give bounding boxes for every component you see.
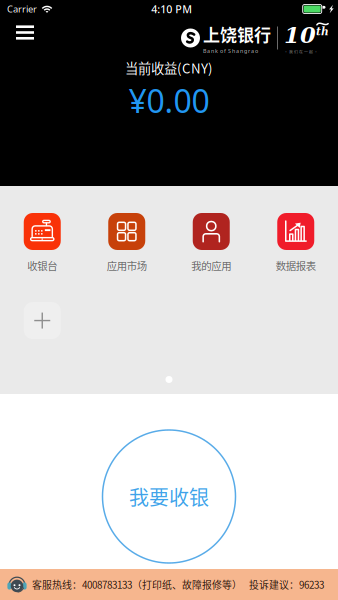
staticText: 投诉建议：96233 [249, 577, 324, 592]
staticText: ¥0.00 [128, 79, 209, 122]
button[interactable]: 我的应用 [169, 213, 253, 273]
staticText: 收银台 [27, 258, 57, 273]
staticText: 我要收银 [129, 482, 209, 511]
button[interactable]: Add app [0, 302, 84, 339]
staticText: 数据报表 [276, 258, 316, 273]
staticText: th [316, 25, 329, 38]
button[interactable]: 我要收银 [102, 430, 235, 563]
staticText: 客服热线：4008783133（打印纸、故障报修等） [32, 577, 242, 592]
staticText: 上饶银行 [203, 22, 271, 46]
staticText: 10 [284, 22, 316, 48]
button[interactable]: 数据报表 [253, 213, 338, 273]
button[interactable]: 应用市场 [84, 213, 169, 273]
staticText: 我的应用 [191, 258, 231, 273]
staticText: Carrier [7, 3, 37, 15]
staticText: 4:10 PM [151, 2, 192, 16]
button[interactable]: 收银台 [0, 213, 84, 273]
staticText: 当前收益(CNY) [125, 58, 213, 77]
staticText: · 我 们 在 一 起 · [284, 49, 318, 54]
button[interactable]: Menu [0, 21, 46, 55]
staticText: B a n k o f S h a n g r a o [203, 47, 258, 54]
staticText: 应用市场 [107, 258, 147, 273]
